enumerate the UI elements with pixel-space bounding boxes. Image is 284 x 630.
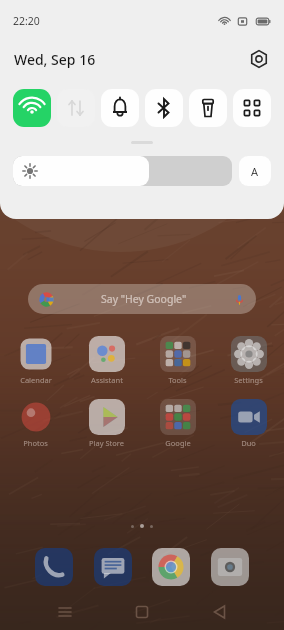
button[interactable]: Settings — [213, 336, 284, 385]
staticText: Assistant — [91, 375, 123, 385]
button[interactable]: Brightness — [13, 156, 232, 186]
button[interactable]: Chrome — [152, 548, 190, 586]
button[interactable]: Say "Hey Google" — [28, 284, 256, 314]
button[interactable]: Tools — [142, 336, 213, 385]
staticText: Google — [165, 438, 191, 448]
button[interactable]: Assistant — [71, 336, 142, 385]
button[interactable]: Phone — [35, 548, 73, 586]
button[interactable]: Home — [129, 600, 155, 624]
button[interactable]: Google — [142, 399, 213, 448]
button[interactable]: More tiles — [233, 89, 271, 127]
button[interactable]: Wi-Fi — [13, 89, 51, 127]
button[interactable]: Bluetooth — [145, 89, 183, 127]
staticText: Wed, Sep 16 — [14, 50, 96, 69]
button[interactable]: Back — [207, 600, 233, 624]
button[interactable]: Play Store — [71, 399, 142, 448]
button[interactable]: Mobile data — [57, 89, 95, 127]
button[interactable]: Settings — [246, 46, 272, 72]
staticText: Tools — [168, 375, 187, 385]
staticText: Play Store — [89, 438, 124, 448]
button[interactable]: Camera — [211, 548, 249, 586]
button[interactable]: Photos — [0, 399, 71, 448]
button[interactable]: Recents — [52, 600, 78, 624]
staticText: 22:20 — [13, 14, 40, 28]
button[interactable]: Flashlight — [189, 89, 227, 127]
staticText: Photos — [23, 438, 48, 448]
staticText: Duo — [241, 438, 256, 448]
staticText: Calendar — [20, 375, 52, 385]
button[interactable]: Sound — [101, 89, 139, 127]
staticText: A — [251, 164, 259, 179]
button[interactable]: Messages — [94, 548, 132, 586]
button[interactable]: Calendar — [0, 336, 71, 385]
staticText: Settings — [234, 375, 263, 385]
staticText: Say "Hey Google" — [101, 292, 187, 306]
button[interactable]: A — [239, 156, 271, 186]
button[interactable]: Duo — [213, 399, 284, 448]
